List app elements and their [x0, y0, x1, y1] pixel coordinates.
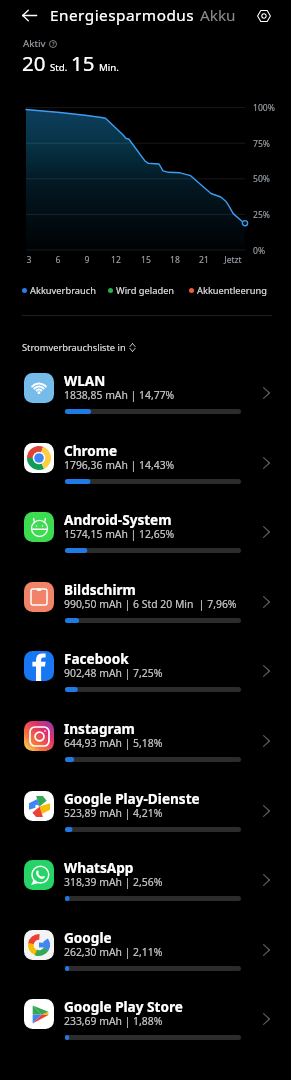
staticText: 1574,15 mAh | 12,65%: [64, 527, 175, 541]
other: Details: [263, 1013, 270, 1025]
staticText: 50%: [253, 173, 270, 185]
other: Details: [263, 805, 270, 817]
staticText: Stromverbrauchsliste in: [22, 341, 126, 354]
other: Details: [263, 526, 270, 538]
staticText: 990,50 mAh | 6 Std 20 Min | 7,96%: [64, 597, 237, 611]
button[interactable]: Settings: [250, 2, 277, 29]
staticText: Instagram: [64, 719, 135, 738]
staticText: Wird geladen: [116, 284, 175, 297]
other: Details: [263, 457, 270, 469]
staticText: 262,30 mAh | 2,11%: [64, 945, 163, 959]
button[interactable]: Akku: [197, 2, 239, 29]
staticText: Google Play Store: [64, 997, 183, 1016]
staticText: Akku: [200, 5, 236, 26]
staticText: Std.: [50, 61, 68, 74]
staticText: 233,69 mAh | 1,88%: [64, 1014, 163, 1028]
staticText: Facebook: [64, 649, 129, 668]
button[interactable]: Back: [14, 0, 45, 31]
staticText: 9: [73, 254, 101, 266]
button[interactable]: Facebook: [0, 643, 291, 713]
staticText: 20: [22, 49, 46, 77]
staticText: Jetzt: [219, 254, 247, 266]
staticText: 644,93 mAh | 5,18%: [64, 736, 163, 750]
button[interactable]: Bildschirm: [0, 574, 291, 644]
other: Details: [263, 596, 270, 608]
staticText: 15: [71, 49, 95, 77]
button[interactable]: Chrome: [0, 435, 291, 505]
other: Details: [263, 944, 270, 956]
staticText: Android-System: [64, 510, 172, 529]
staticText: Akkuverbrauch: [30, 284, 96, 297]
staticText: ?: [52, 40, 55, 48]
button[interactable]: Google Play-Dienste: [0, 783, 291, 853]
other: Details: [263, 874, 270, 886]
staticText: 12: [102, 254, 130, 266]
staticText: 21: [190, 254, 218, 266]
staticText: Google Play-Dienste: [64, 789, 200, 808]
staticText: 1838,85 mAh | 14,77%: [64, 388, 175, 402]
staticText: 6: [44, 254, 72, 266]
staticText: 3: [15, 254, 43, 266]
button[interactable]: Google: [0, 922, 291, 992]
other: Details: [263, 665, 270, 677]
staticText: Bildschirm: [64, 580, 136, 599]
staticText: Min.: [99, 61, 119, 74]
staticText: 523,89 mAh | 4,21%: [64, 806, 163, 820]
button[interactable]: Android-System: [0, 504, 291, 574]
staticText: 25%: [253, 209, 270, 221]
staticText: 318,39 mAh | 2,56%: [64, 875, 163, 889]
staticText: 902,48 mAh | 7,25%: [64, 666, 163, 680]
other: Info: [49, 40, 57, 48]
button[interactable]: Stromverbrauchsliste in: [20, 338, 138, 357]
button[interactable]: WLAN: [0, 365, 291, 435]
button[interactable]: Google Play Store: [0, 991, 291, 1061]
staticText: Energiesparmodus: [50, 5, 195, 26]
button[interactable]: WhatsApp: [0, 852, 291, 922]
staticText: 18: [161, 254, 189, 266]
staticText: WhatsApp: [64, 858, 134, 877]
staticText: Akkuentleerung: [197, 284, 267, 297]
staticText: Chrome: [64, 441, 118, 460]
other: Details: [263, 735, 270, 747]
staticText: 15: [132, 254, 160, 266]
other: Details: [263, 387, 270, 399]
staticText: Google: [64, 928, 112, 947]
staticText: Aktiv: [23, 37, 46, 50]
button[interactable]: Instagram: [0, 713, 291, 783]
staticText: 100%: [253, 102, 275, 114]
staticText: 1796,36 mAh | 14,43%: [64, 458, 175, 472]
staticText: 0%: [253, 245, 266, 257]
staticText: 75%: [253, 138, 270, 150]
staticText: WLAN: [64, 371, 106, 390]
